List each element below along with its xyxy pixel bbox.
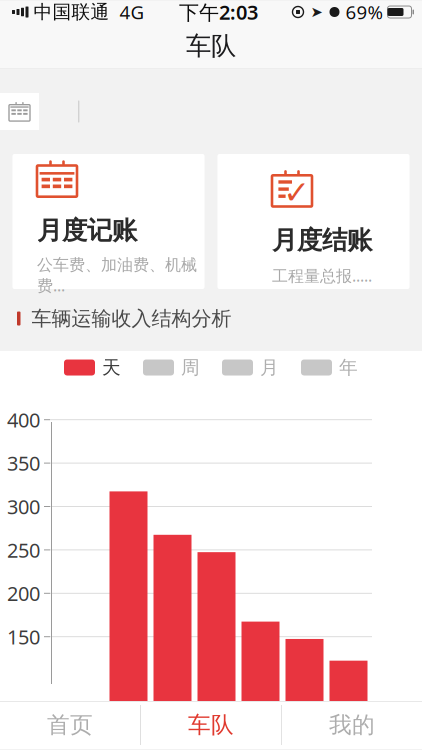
staticText: 400 (7, 406, 40, 433)
button[interactable]: 周 (143, 356, 200, 379)
button[interactable]: 月 (222, 356, 279, 379)
staticText: 月 (260, 356, 279, 379)
staticText: 年 (339, 356, 358, 379)
staticText: 69% (345, 0, 383, 24)
staticText: 250 (7, 537, 40, 563)
staticText: 200 (7, 580, 40, 607)
staticText: 工程量总报..... (272, 265, 372, 286)
staticText: 月度记账 (37, 215, 137, 246)
staticText: 车队 (186, 30, 236, 61)
staticText: 首页 (47, 711, 93, 739)
button[interactable]: 首页 (0, 701, 140, 749)
staticText: 天 (102, 356, 121, 379)
staticText: 我的 (329, 711, 375, 739)
staticText: ➤ (310, 4, 322, 20)
staticText: 中国联通 (33, 0, 109, 23)
staticText: 4G (119, 0, 144, 24)
staticText: 车队 (188, 711, 234, 739)
staticText: ✓ (283, 174, 310, 211)
button[interactable]: ✓ (217, 154, 409, 289)
staticText: 150 (7, 623, 40, 650)
staticText: 月度结账 (272, 225, 372, 256)
staticText: 公车费、加油费、机械费... (37, 255, 197, 296)
button[interactable]: 天 (64, 356, 121, 379)
staticText: 车辆运输收入结构分析 (31, 306, 231, 331)
button[interactable]: 选择日期 (0, 93, 39, 130)
staticText: 350 (7, 450, 40, 476)
button[interactable]: 年 (301, 356, 358, 379)
staticText: 下午2:03 (179, 0, 258, 25)
staticText: 周 (181, 356, 200, 379)
button[interactable]: 月度记账 (12, 154, 204, 289)
staticText: 300 (7, 493, 40, 520)
button[interactable]: 我的 (282, 701, 422, 749)
button[interactable]: 车队 (141, 701, 281, 749)
